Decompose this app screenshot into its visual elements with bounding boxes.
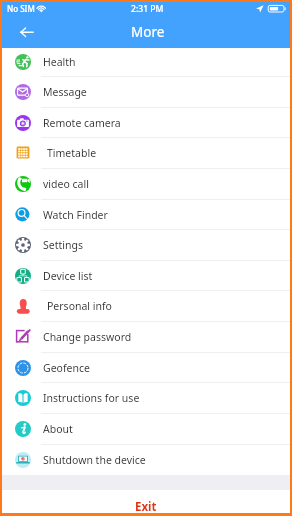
button[interactable]: Exit: [2, 490, 290, 513]
staticText: Instructions for use: [43, 391, 140, 405]
button[interactable]: Back: [18, 23, 48, 48]
staticText: Shutdown the device: [43, 453, 146, 467]
button[interactable]: Health: [2, 48, 290, 77]
button[interactable]: Remote camera: [2, 108, 290, 138]
button[interactable]: Shutdown the device: [2, 445, 290, 475]
staticText: About: [43, 422, 73, 436]
staticText: Device list: [43, 269, 93, 283]
staticText: Settings: [43, 238, 83, 252]
staticText: Exit: [135, 499, 157, 513]
staticText: Remote camera: [43, 116, 121, 130]
button[interactable]: Personal info: [2, 291, 290, 322]
button[interactable]: Device list: [2, 261, 290, 291]
staticText: Watch Finder: [43, 208, 108, 222]
button[interactable]: Settings: [2, 230, 290, 261]
staticText: Personal info: [47, 299, 112, 313]
button[interactable]: Watch Finder: [2, 200, 290, 230]
staticText: More: [131, 23, 165, 41]
button[interactable]: video call: [2, 169, 290, 200]
staticText: Timetable: [47, 146, 97, 160]
staticText: Geofence: [43, 361, 90, 375]
button[interactable]: Change password: [2, 322, 290, 353]
staticText: Message: [43, 85, 87, 99]
button[interactable]: Instructions for use: [2, 383, 290, 414]
staticText: video call: [43, 177, 89, 191]
staticText: 2:31 PM: [131, 3, 164, 15]
staticText: Change password: [43, 330, 132, 344]
button[interactable]: About: [2, 414, 290, 445]
staticText: No SIM: [7, 3, 35, 14]
staticText: Health: [43, 55, 76, 69]
button[interactable]: Message: [2, 77, 290, 108]
button[interactable]: Timetable: [2, 138, 290, 169]
button[interactable]: Geofence: [2, 353, 290, 383]
